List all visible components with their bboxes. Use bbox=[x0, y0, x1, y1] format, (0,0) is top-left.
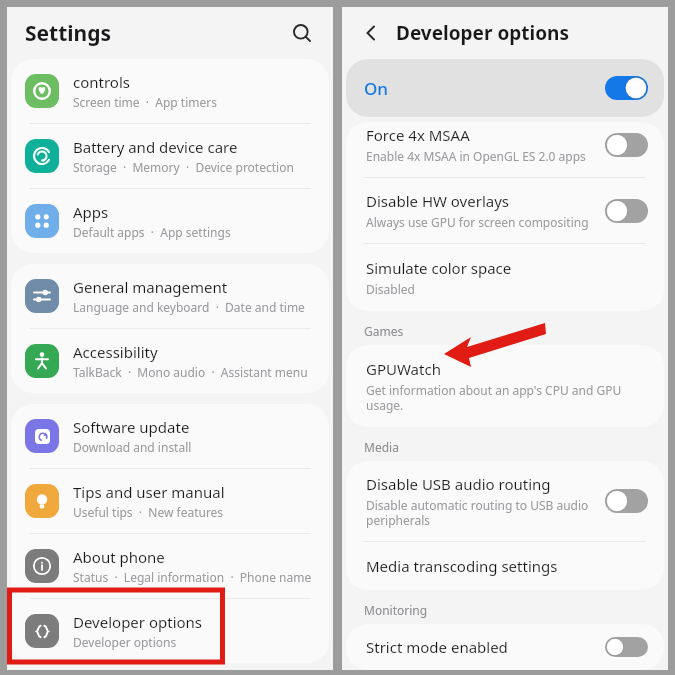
staticText: Media bbox=[364, 439, 399, 455]
button[interactable]: GPUWatch bbox=[346, 345, 664, 427]
button[interactable]: Developer options bbox=[11, 599, 329, 663]
button[interactable]: Toggle off bbox=[605, 133, 648, 157]
staticText: Enable 4x MSAA in OpenGL ES 2.0 apps bbox=[366, 148, 586, 164]
button[interactable]: General management bbox=[11, 264, 329, 328]
button[interactable]: Simulate color space bbox=[346, 244, 664, 311]
staticText: About phone bbox=[73, 547, 165, 567]
staticText: Default apps · App settings bbox=[73, 224, 231, 240]
staticText: Media transcoding settings bbox=[366, 556, 558, 576]
button[interactable]: Strict mode enabled bbox=[346, 624, 664, 670]
staticText: Accessibility bbox=[73, 342, 158, 362]
staticText: Force 4x MSAA bbox=[366, 125, 470, 145]
button[interactable]: Media transcoding settings bbox=[346, 542, 664, 590]
button[interactable]: Toggle off bbox=[605, 637, 648, 657]
staticText: On bbox=[364, 77, 388, 100]
staticText: Disable automatic routing to USB audio p… bbox=[366, 497, 589, 528]
staticText: Apps bbox=[73, 202, 109, 222]
staticText: Status · Legal information · Phone name bbox=[73, 569, 312, 585]
button[interactable]: On bbox=[346, 59, 664, 117]
button[interactable]: Accessibility bbox=[11, 329, 329, 393]
button[interactable]: Tips and user manual bbox=[11, 469, 329, 533]
staticText: Screen time · App timers bbox=[73, 94, 217, 110]
staticText: Monitoring bbox=[364, 602, 428, 618]
button[interactable]: Disable HW overlays bbox=[346, 178, 664, 243]
button[interactable]: Back bbox=[354, 16, 388, 50]
button[interactable]: Apps bbox=[11, 189, 329, 253]
staticText: Disable USB audio routing bbox=[366, 474, 551, 494]
staticText: controls bbox=[73, 72, 130, 92]
button[interactable]: Toggle on bbox=[605, 76, 648, 100]
button[interactable]: Battery and device care bbox=[11, 124, 329, 188]
staticText: Tips and user manual bbox=[73, 482, 225, 502]
staticText: Get information about an app's CPU and G… bbox=[366, 382, 648, 413]
staticText: Strict mode enabled bbox=[366, 637, 508, 657]
staticText: Games bbox=[364, 323, 404, 339]
button[interactable]: About phone bbox=[11, 534, 329, 598]
staticText: Simulate color space bbox=[366, 258, 512, 278]
staticText: Battery and device care bbox=[73, 137, 238, 157]
button[interactable]: Software update bbox=[11, 404, 329, 468]
button[interactable]: Toggle off bbox=[605, 489, 648, 513]
staticText: Storage · Memory · Device protection bbox=[73, 159, 294, 175]
staticText: Settings bbox=[25, 19, 112, 48]
staticText: Language and keyboard · Date and time bbox=[73, 299, 305, 315]
button[interactable]: Disable USB audio routing bbox=[346, 461, 664, 541]
staticText: TalkBack · Mono audio · Assistant menu bbox=[73, 364, 308, 380]
staticText: Software update bbox=[73, 417, 190, 437]
staticText: Disable HW overlays bbox=[366, 191, 510, 211]
staticText: Disabled bbox=[366, 281, 415, 297]
staticText: General management bbox=[73, 277, 228, 297]
button[interactable]: Toggle off bbox=[605, 199, 648, 223]
button[interactable]: controls bbox=[11, 59, 329, 123]
staticText: Developer options bbox=[73, 634, 177, 650]
staticText: Developer options bbox=[73, 612, 203, 632]
staticText: Developer options bbox=[396, 20, 569, 46]
staticText: Useful tips · New features bbox=[73, 504, 224, 520]
staticText: Download and install bbox=[73, 439, 192, 455]
staticText: Always use GPU for screen compositing bbox=[366, 214, 589, 230]
button[interactable]: Search bbox=[285, 16, 319, 50]
button[interactable]: Force 4x MSAA bbox=[346, 122, 664, 177]
staticText: GPUWatch bbox=[366, 359, 441, 379]
